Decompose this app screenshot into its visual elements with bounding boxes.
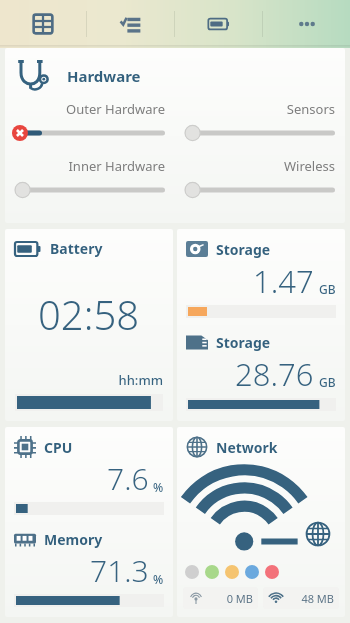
staticText: % xyxy=(153,479,164,495)
button[interactable]: Storage xyxy=(177,229,345,421)
staticText: 28.76 xyxy=(235,353,314,395)
button[interactable]: Outer Hardware xyxy=(15,100,165,143)
button[interactable]: 0 MB xyxy=(183,587,258,609)
staticText: 48 MB xyxy=(284,591,334,606)
button[interactable]: CPU xyxy=(5,427,173,617)
button[interactable]: Sensors xyxy=(185,100,335,143)
staticText: 1.47 xyxy=(253,260,314,302)
staticText: 0 MB xyxy=(204,591,253,606)
staticText: Memory xyxy=(44,530,103,549)
button[interactable]: Battery xyxy=(175,0,262,48)
staticText: 02:58 xyxy=(38,287,140,341)
button[interactable]: Inner Hardware xyxy=(15,157,165,200)
staticText: Storage xyxy=(216,333,271,352)
staticText: Inner Hardware xyxy=(15,157,165,175)
staticText: Wireless xyxy=(185,157,335,175)
button[interactable]: More options xyxy=(263,0,350,48)
staticText: Storage xyxy=(216,240,271,259)
staticText: hh:mm xyxy=(15,371,163,389)
button[interactable]: Hardware xyxy=(5,48,345,223)
staticText: GB xyxy=(319,374,336,390)
staticText: Network xyxy=(216,438,278,457)
staticText: Battery xyxy=(50,239,103,258)
staticText: % xyxy=(153,571,164,587)
staticText: CPU xyxy=(44,438,73,457)
staticText: 71.3 xyxy=(90,550,149,591)
button[interactable]: Wireless xyxy=(185,157,335,200)
button[interactable]: Battery xyxy=(5,229,173,421)
staticText: GB xyxy=(319,281,336,297)
button[interactable]: Dashboard xyxy=(0,0,86,48)
staticText: 7.6 xyxy=(107,458,149,499)
button[interactable]: 48 MB xyxy=(263,587,339,609)
staticText: Hardware xyxy=(67,66,141,86)
staticText: Sensors xyxy=(185,100,335,118)
button[interactable]: Network xyxy=(177,427,345,617)
button[interactable]: Checklist xyxy=(87,0,174,48)
staticText: Outer Hardware xyxy=(15,100,165,118)
